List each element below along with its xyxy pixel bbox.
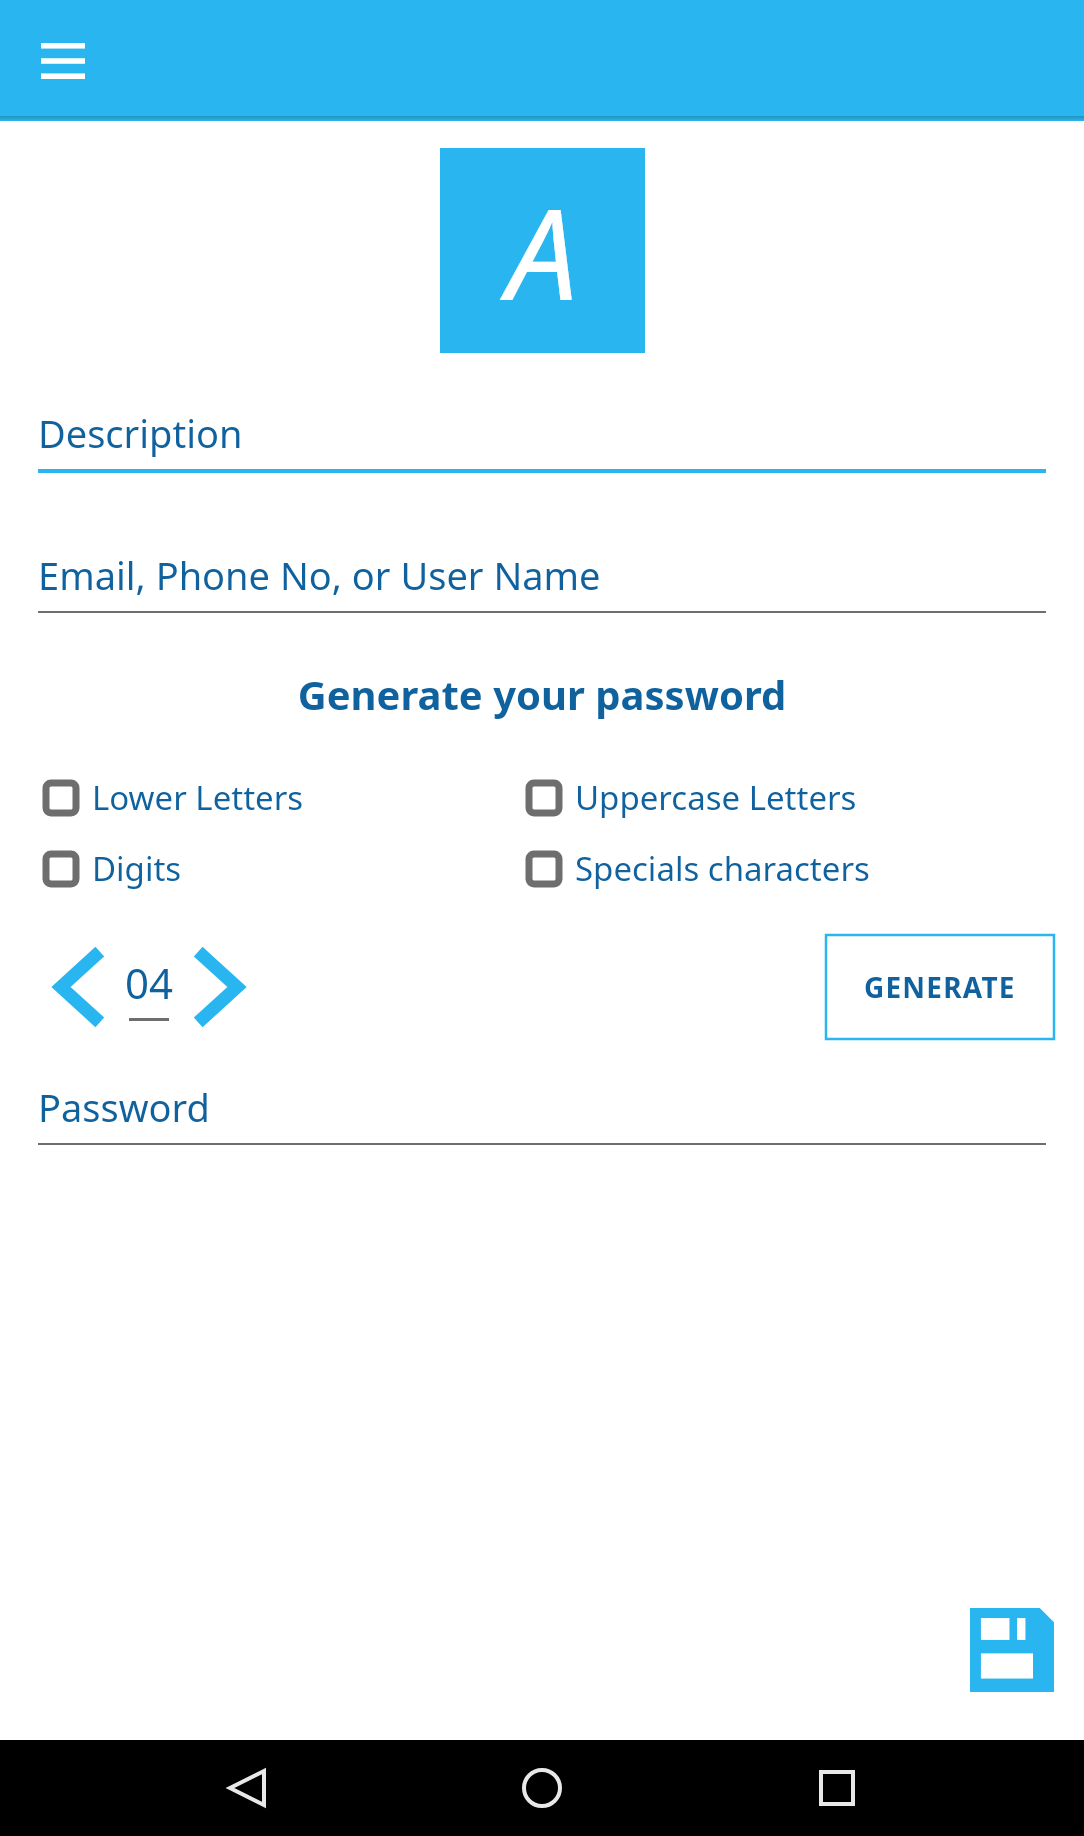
staticText: Password	[38, 1081, 210, 1133]
button[interactable]: Uppercase Letters	[529, 775, 1060, 820]
staticText: Email, Phone No, or User Name	[38, 549, 601, 601]
button[interactable]: Email, Phone No, or User Name	[38, 549, 1046, 613]
button[interactable]: Lower Letters	[46, 775, 529, 820]
button[interactable]: Decrease length	[40, 949, 116, 1025]
button[interactable]: Password	[38, 1081, 1046, 1145]
button[interactable]: Description	[38, 407, 1046, 473]
staticText: Description	[38, 407, 243, 459]
button[interactable]: Home	[494, 1740, 590, 1836]
staticText: A	[507, 165, 578, 337]
staticText: GENERATE	[864, 968, 1016, 1006]
button[interactable]: Recent apps	[789, 1740, 885, 1836]
button[interactable]: Back	[199, 1740, 295, 1836]
button[interactable]: GENERATE	[826, 935, 1054, 1039]
button[interactable]: Open navigation menu	[36, 34, 90, 88]
staticText: Generate your password	[0, 667, 1084, 721]
button[interactable]: Specials characters	[529, 846, 1060, 891]
staticText: Specials characters	[575, 846, 870, 891]
staticText: Uppercase Letters	[575, 775, 857, 820]
button[interactable]: Increase length	[182, 949, 258, 1025]
staticText: Lower Letters	[92, 775, 304, 820]
button[interactable]: Digits	[46, 846, 529, 891]
staticText: Digits	[92, 846, 182, 891]
button[interactable]: Save	[968, 1606, 1056, 1694]
staticText: 04	[125, 954, 174, 1011]
